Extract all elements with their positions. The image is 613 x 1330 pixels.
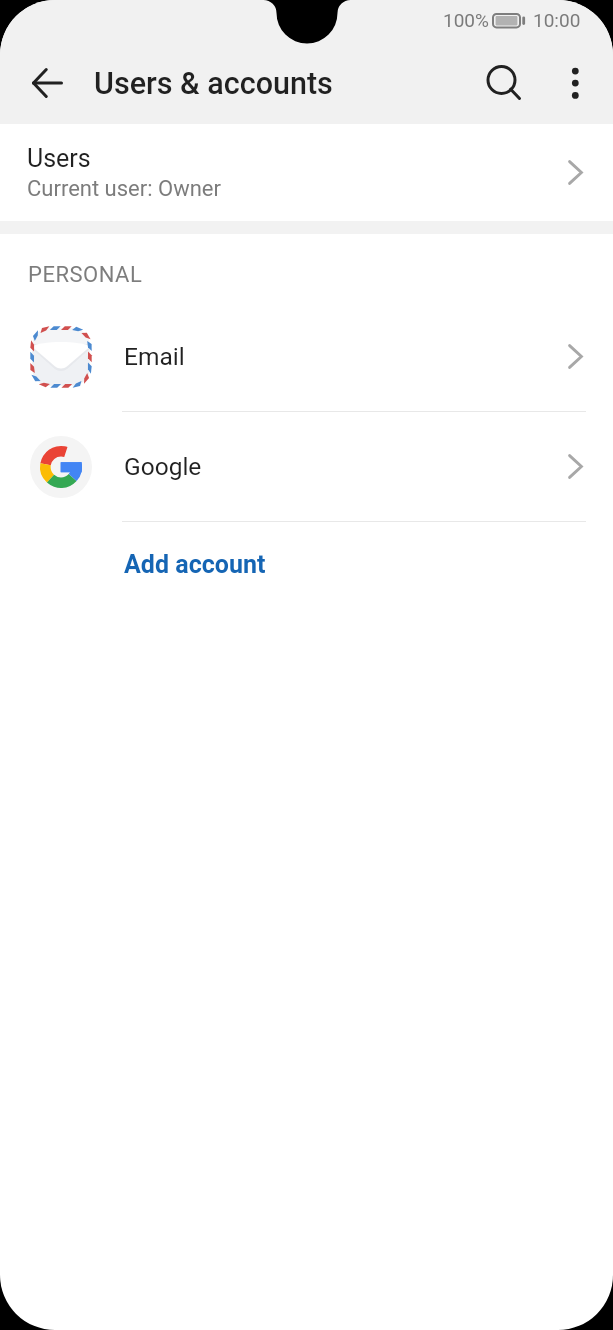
staticText: Current user: Owner (27, 176, 221, 202)
button[interactable]: More options (545, 53, 605, 113)
staticText: Add account (124, 550, 266, 579)
button[interactable]: Search (470, 52, 532, 114)
staticText: PERSONAL (28, 262, 143, 288)
staticText: Email (124, 342, 185, 371)
button[interactable]: Google (0, 412, 613, 521)
button[interactable]: Add account (0, 522, 613, 607)
staticText: 100% (443, 9, 489, 31)
button[interactable]: Email (0, 302, 613, 411)
staticText: Users (27, 144, 91, 173)
button[interactable]: Users (0, 124, 613, 221)
staticText: Users & accounts (94, 66, 333, 102)
staticText: Google (124, 452, 202, 481)
button[interactable]: Back (15, 51, 79, 115)
staticText: 10:00 (533, 9, 581, 31)
